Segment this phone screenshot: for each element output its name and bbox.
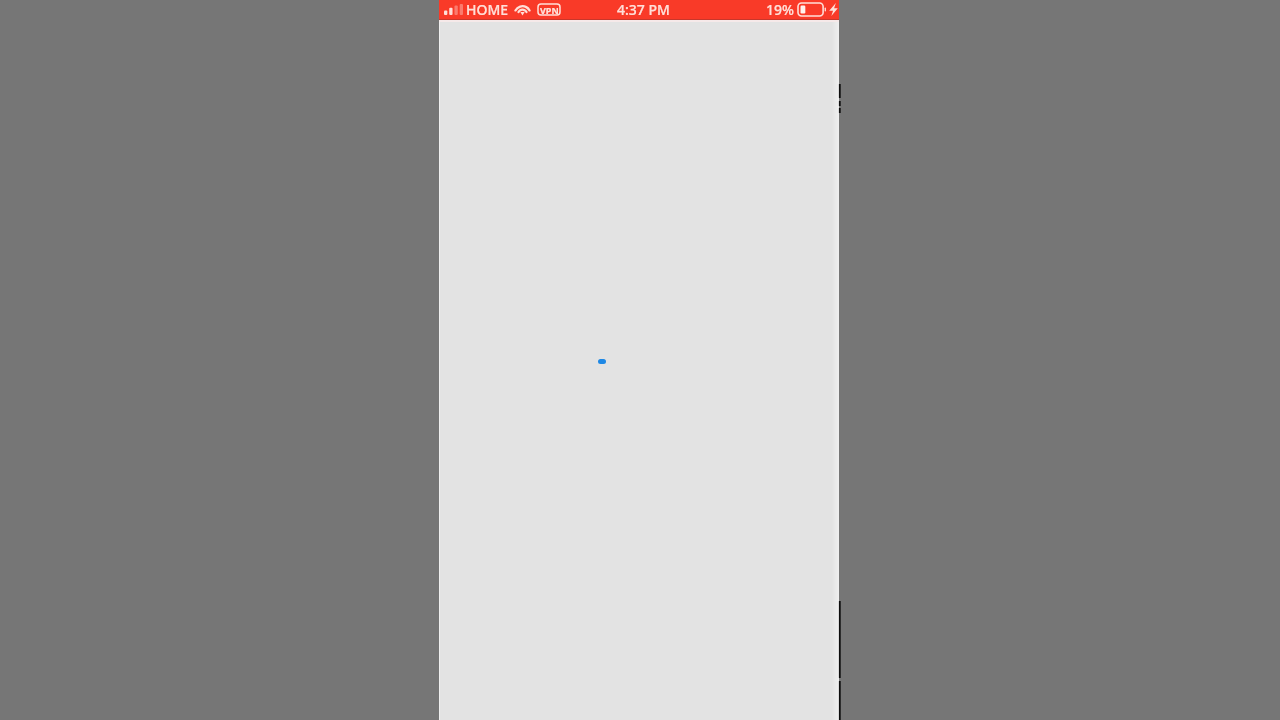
other: Battery 19 percent <box>798 3 825 16</box>
other: Cellular signal strength <box>444 4 463 15</box>
staticText: VPN <box>540 4 559 16</box>
other: VPN active <box>538 3 560 16</box>
other: Wi-Fi connected <box>514 3 531 16</box>
staticText: 4:37 PM <box>617 0 670 19</box>
other: Loading <box>598 359 606 364</box>
button[interactable]: Cellular signal strength <box>439 0 839 19</box>
other: Charging <box>829 3 838 16</box>
staticText: HOME <box>466 0 509 19</box>
staticText: 19% <box>766 0 794 19</box>
